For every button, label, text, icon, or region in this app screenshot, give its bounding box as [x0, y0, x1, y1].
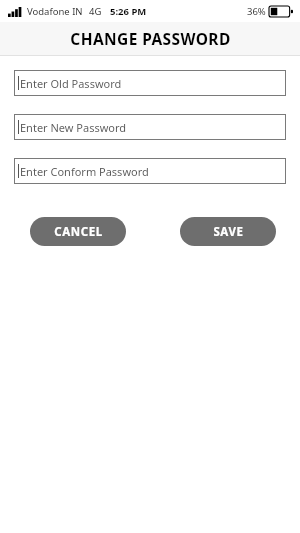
button[interactable]: CANCEL — [30, 217, 126, 246]
staticText: Vodafone IN — [27, 5, 83, 18]
staticText: Enter Conform Password — [20, 164, 149, 179]
staticText: Enter New Password — [20, 120, 127, 135]
staticText: Enter Old Password — [20, 76, 122, 91]
staticText: 5:26 PM — [110, 5, 147, 18]
button[interactable]: Enter Conform Password — [14, 158, 286, 184]
button[interactable]: Enter New Password — [14, 114, 286, 140]
staticText: CANCEL — [54, 224, 103, 240]
staticText: SAVE — [213, 224, 244, 240]
staticText: 36% — [247, 5, 266, 18]
staticText: CHANGE PASSWORD — [70, 28, 231, 49]
staticText: 4G — [89, 5, 102, 18]
button[interactable]: SAVE — [180, 217, 276, 246]
button[interactable]: Enter Old Password — [14, 70, 286, 96]
